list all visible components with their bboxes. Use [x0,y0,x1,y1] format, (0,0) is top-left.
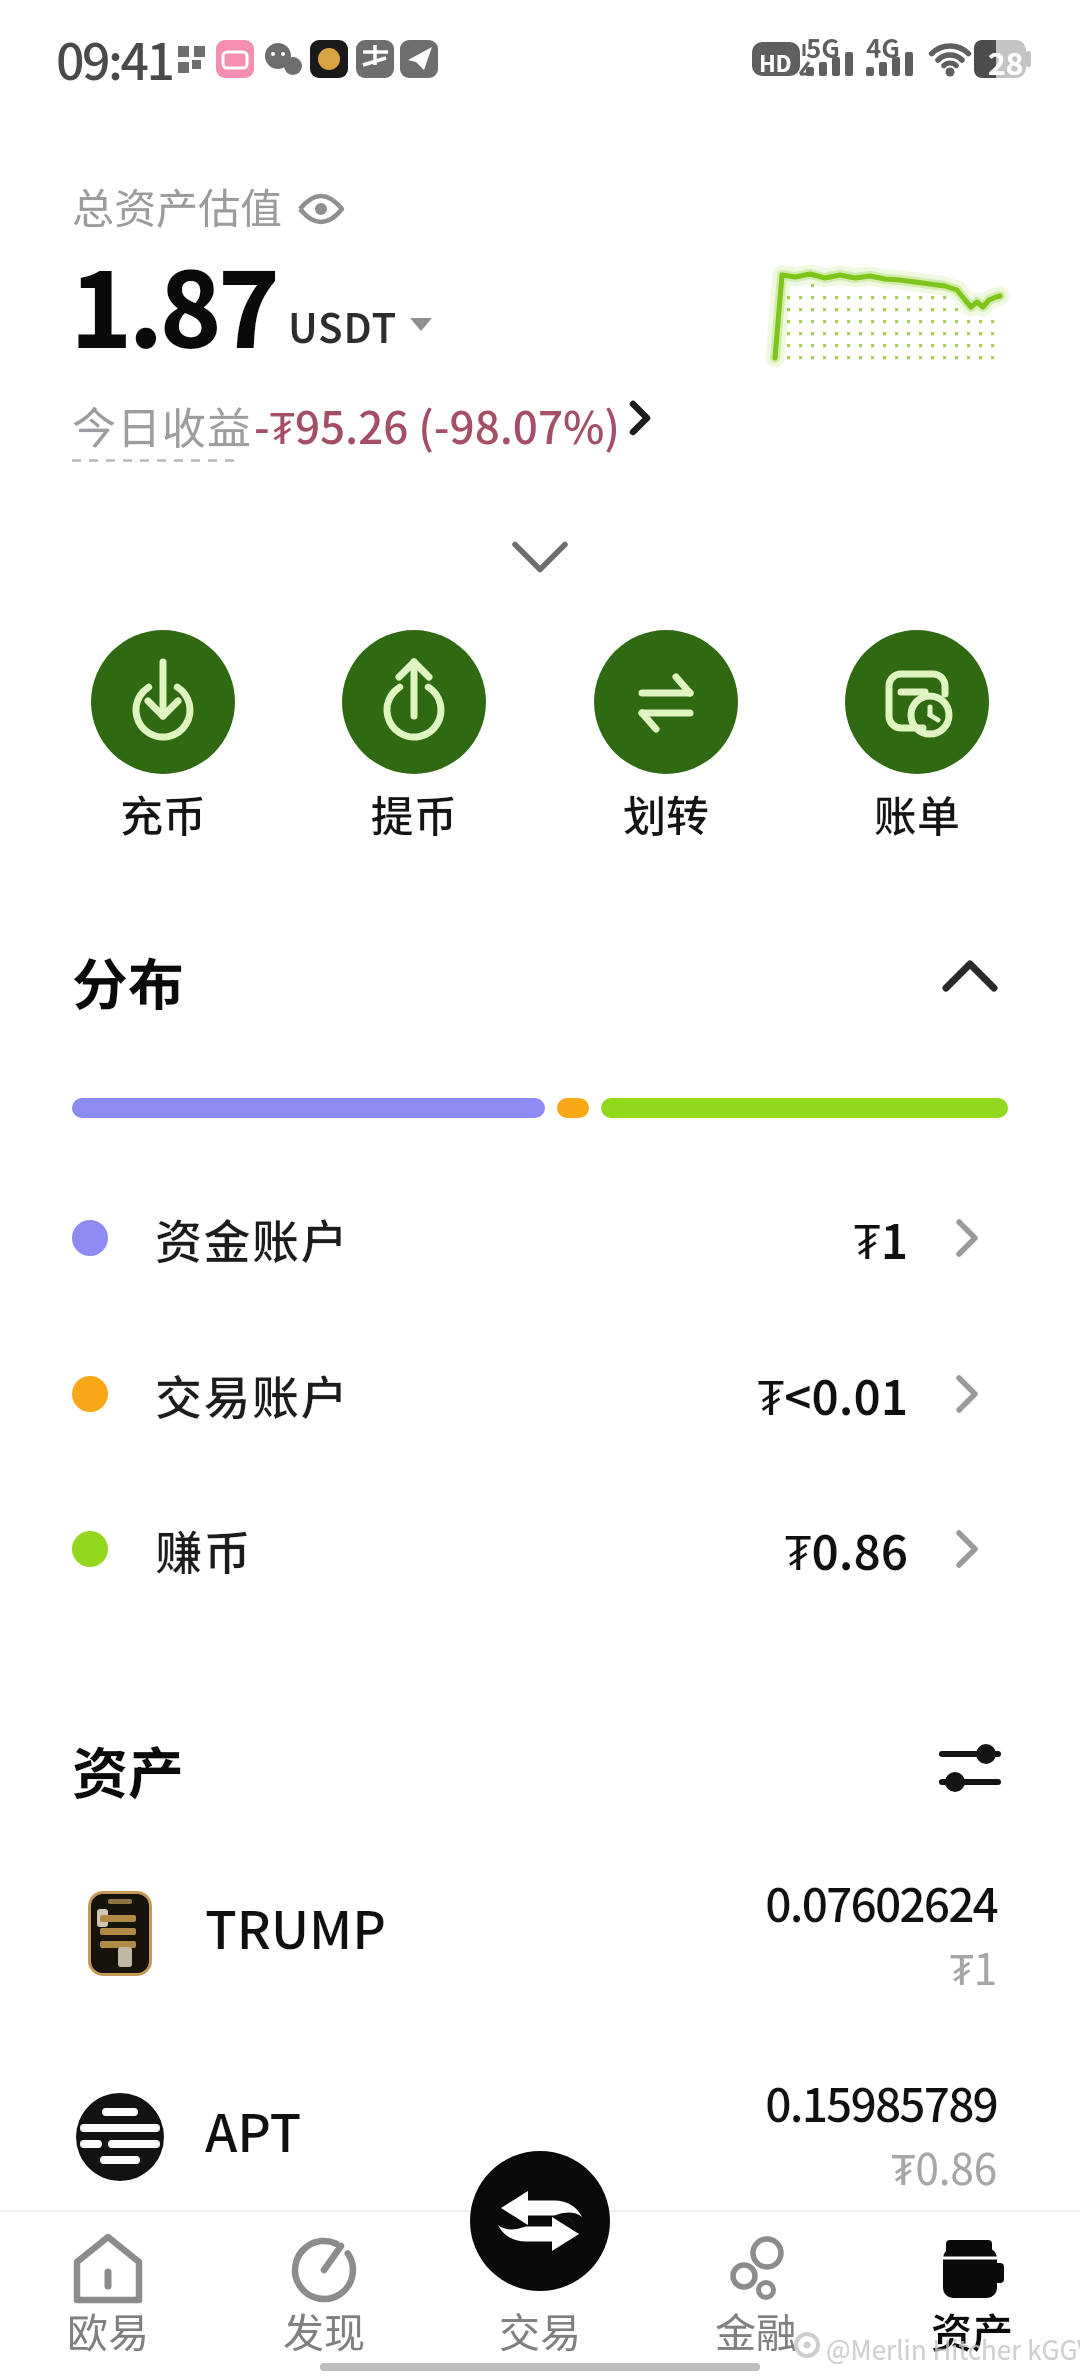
button[interactable] [60,390,660,460]
button[interactable]: 账单 [845,630,989,840]
staticText: 账单 [874,782,960,844]
staticText: APT [205,2092,302,2167]
staticText: ₮<0.01 [757,1360,908,1428]
staticText: ₮1 [853,1204,908,1272]
staticText: 资产 [72,1729,184,1810]
staticText: 交易账户 [155,1360,349,1428]
staticText: 0.15985789 [765,2069,997,2136]
staticText: USDT [288,297,398,355]
staticText: ₮0.86 [784,1515,908,1583]
staticText: 4G [866,28,900,66]
staticText: 赚币 [155,1515,252,1583]
staticText: @Merlin Hitcher kGGV [826,2330,1080,2368]
staticText: 提币 [371,782,457,844]
button[interactable] [940,1740,1002,1796]
button[interactable] [470,2151,610,2291]
staticText: 发现 [283,2300,365,2359]
button[interactable]: 充币 [91,630,235,840]
button[interactable] [0,2060,1080,2210]
staticText: 充币 [120,782,206,844]
staticText: HD [759,46,792,78]
staticText: 交易 [499,2300,581,2359]
button[interactable]: 交易 [445,2222,635,2362]
staticText: 欧易 [67,2300,149,2359]
button[interactable]: 金融 [661,2222,851,2362]
staticText: 28 [988,40,1024,83]
staticText: 1.87 [70,227,277,378]
staticText: 今日收益 [72,393,252,457]
staticText: 资产 [931,2300,1013,2359]
staticText: 资金账户 [155,1204,349,1272]
staticText: 0.07602624 [765,1869,997,1936]
staticText: 划转 [623,782,709,844]
staticText: ₮1 [949,1936,997,1997]
button[interactable] [0,1487,1080,1611]
staticText: TRUMP [205,1889,386,1964]
button[interactable] [0,1860,1080,2005]
button[interactable] [938,950,1002,998]
staticText: 分布 [72,940,184,1021]
button[interactable]: 资产 [877,2222,1067,2362]
staticText: -₮95.26 (-98.07%) [254,393,620,457]
staticText: 总资产估值 [72,175,283,236]
button[interactable]: 欧易 [13,2222,203,2362]
button[interactable] [0,1332,1080,1456]
staticText: 5G [806,28,840,66]
staticText: ₮0.86 [891,2136,997,2197]
staticText: 09:41 [56,22,173,94]
button[interactable]: 发现 [229,2222,419,2362]
button[interactable] [512,544,568,572]
button[interactable] [0,1176,1080,1300]
button[interactable]: 划转 [594,630,738,840]
staticText: 金融 [715,2300,797,2359]
button[interactable]: 提币 [342,630,486,840]
